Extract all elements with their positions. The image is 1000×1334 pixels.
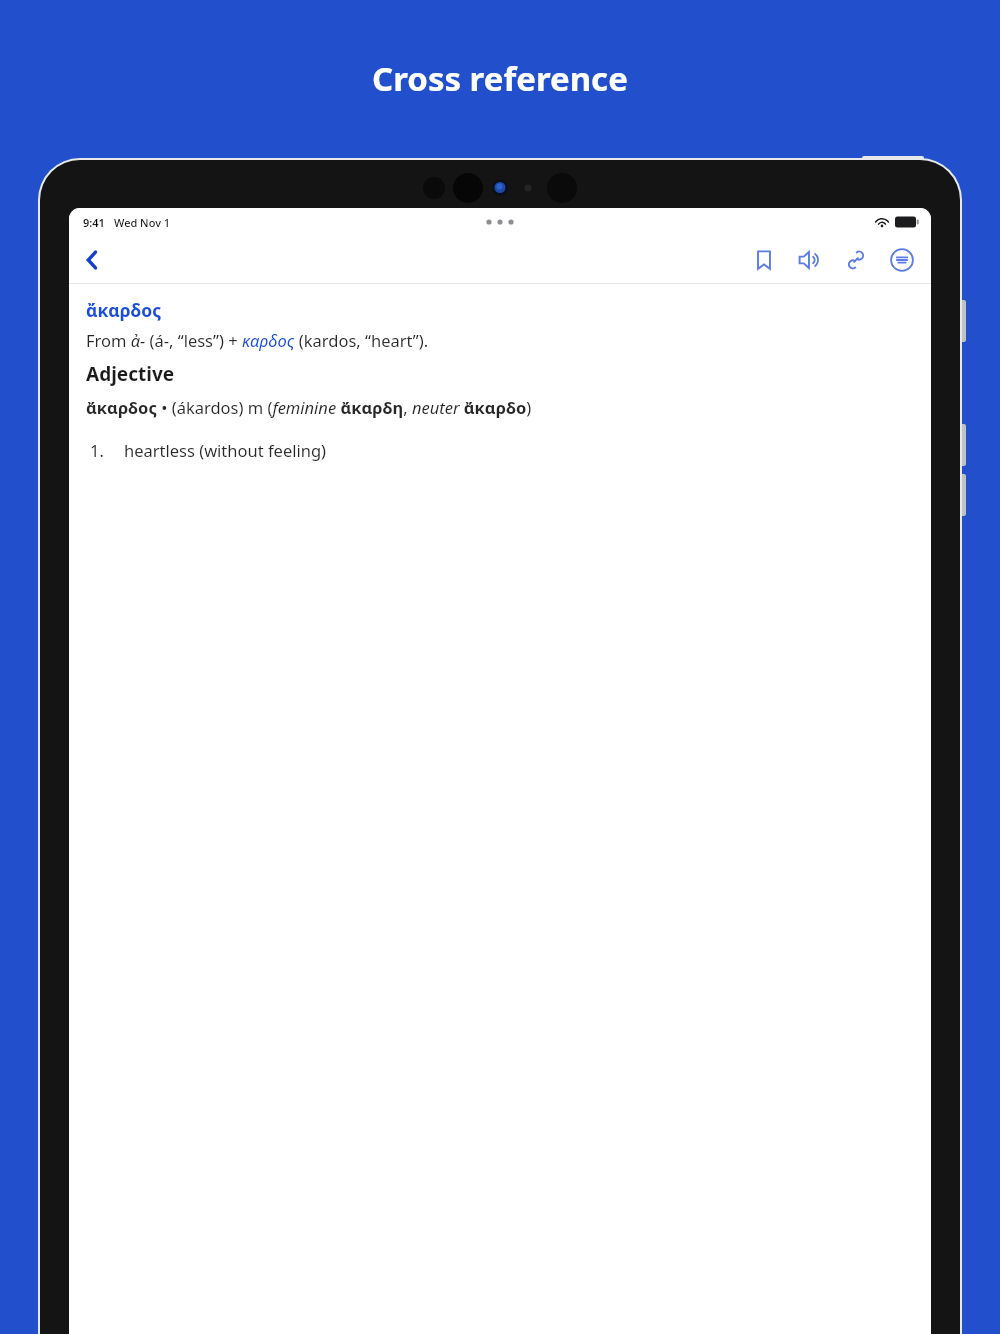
staticText: 9:41	[83, 215, 105, 230]
button[interactable]: Copy link	[833, 237, 879, 283]
staticText: Adjective	[86, 361, 175, 387]
button[interactable]: Back	[69, 237, 115, 283]
staticText: ἄκαρδος • (ákardos) m (feminine ἄκαρδη, …	[86, 396, 532, 418]
button[interactable]: ἄκαρδος	[86, 298, 162, 322]
staticText: heartless (without feeling)	[124, 439, 327, 461]
staticText: 1.	[90, 439, 104, 461]
staticText: Wed Nov 1	[114, 215, 171, 230]
staticText: From ἀ- (á-, “less”) + καρδος (kardos, “…	[86, 329, 429, 351]
button[interactable]: Menu	[879, 237, 925, 283]
staticText: Cross reference	[372, 56, 628, 101]
button[interactable]: Bookmark	[741, 237, 787, 283]
button[interactable]: Pronounce	[787, 237, 833, 283]
